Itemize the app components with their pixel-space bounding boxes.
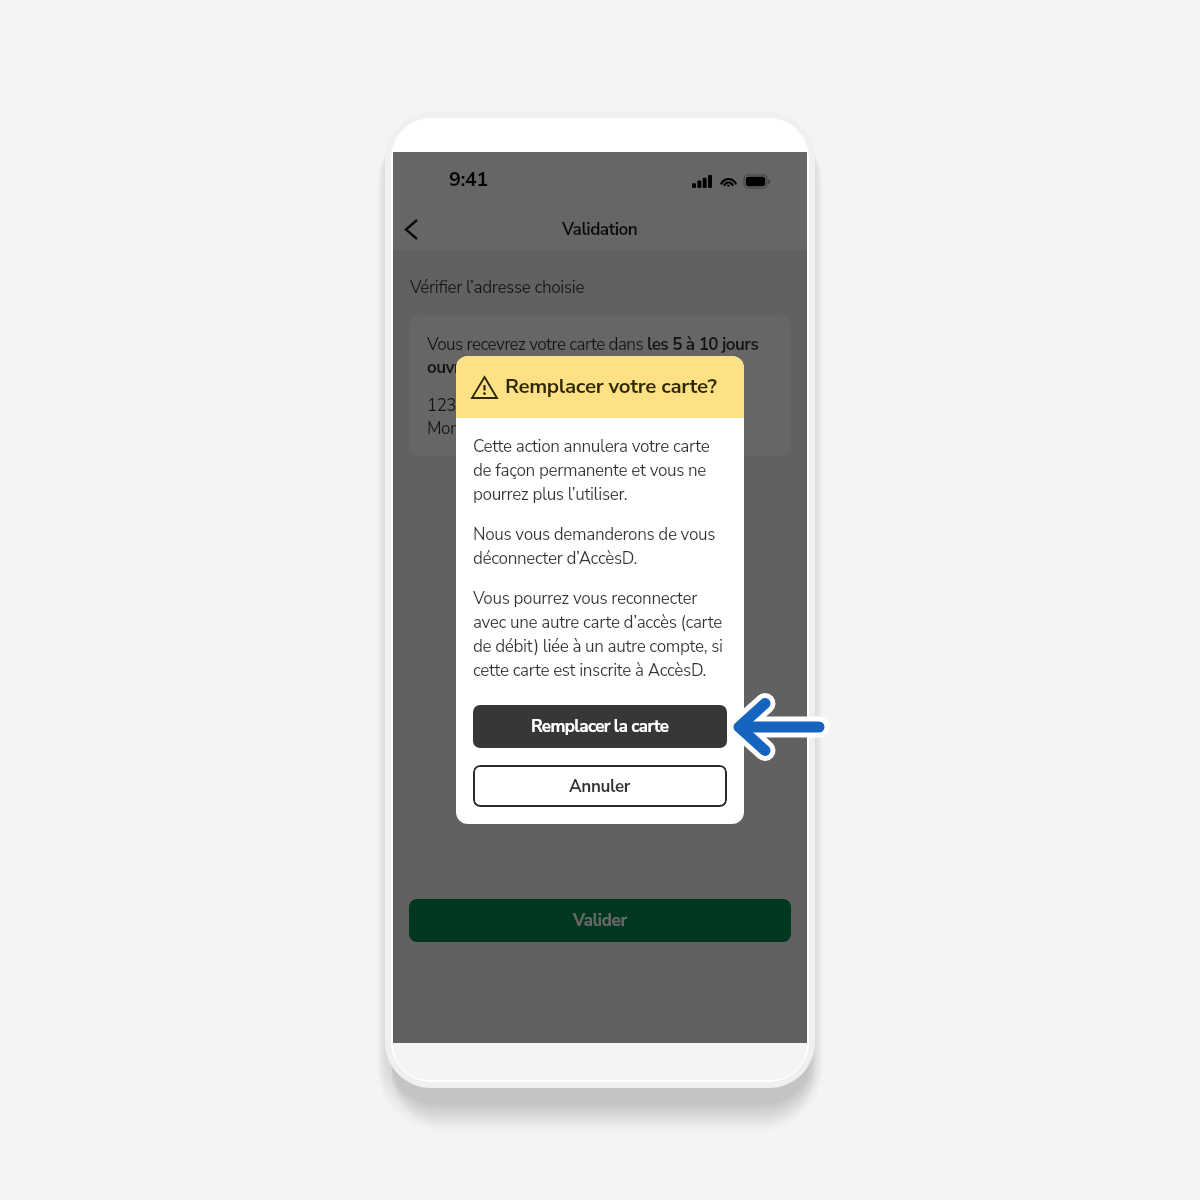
staticText: 9:41 [449, 166, 488, 193]
staticText: Valider [573, 909, 627, 932]
staticText: Vérifier l’adresse choisie [410, 276, 585, 299]
staticText: Vous pourrez vous reconnecter avec une a… [473, 587, 727, 682]
button[interactable]: Annuler [473, 765, 727, 807]
button[interactable]: Remplacer la carte [473, 705, 727, 748]
staticText: Validation [562, 218, 638, 241]
staticText: Annuler [569, 775, 631, 798]
staticText: Cette action annulera votre carte de faç… [473, 435, 727, 506]
other: Indicateur [734, 697, 824, 757]
button[interactable]: Valider [409, 899, 791, 942]
staticText: Remplacer la carte [531, 715, 669, 738]
staticText: Nous vous demanderons de vous déconnecte… [473, 523, 727, 570]
staticText: Remplacer votre carte? [505, 372, 717, 400]
staticText: Vous recevrez votre carte dans les 5 à 1… [427, 333, 773, 379]
staticText: 1234 rue Principale Montréal (Québec) H0… [427, 394, 634, 440]
button[interactable]: Retour [389, 207, 433, 251]
